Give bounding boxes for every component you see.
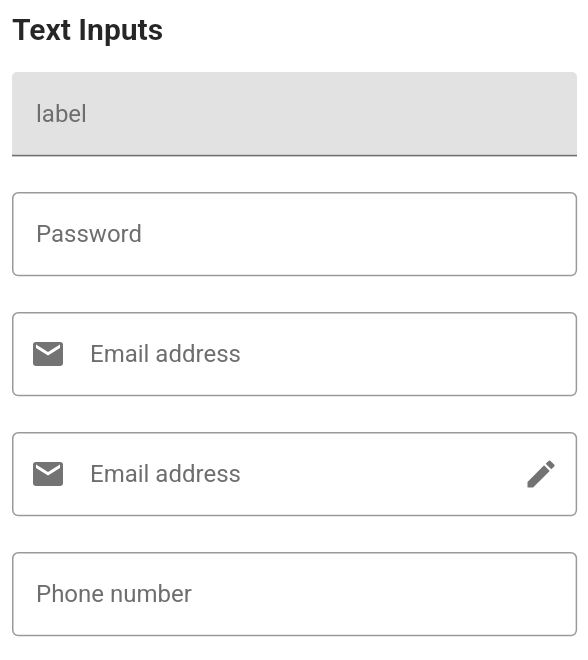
other: Email bbox=[30, 336, 66, 372]
staticText: Text Inputs bbox=[12, 12, 164, 47]
staticText: Phone number bbox=[36, 580, 559, 608]
other: Email bbox=[30, 456, 66, 492]
button[interactable]: Email bbox=[12, 432, 577, 517]
button[interactable]: Password bbox=[12, 192, 577, 277]
button[interactable]: Email bbox=[12, 312, 577, 397]
button[interactable]: Edit bbox=[523, 456, 559, 492]
staticText: Email address bbox=[90, 340, 559, 368]
staticText: Password bbox=[36, 220, 559, 248]
button[interactable]: label bbox=[12, 72, 577, 158]
staticText: Email address bbox=[90, 460, 523, 488]
button[interactable]: Phone number bbox=[12, 552, 577, 637]
staticText: label bbox=[36, 100, 87, 128]
